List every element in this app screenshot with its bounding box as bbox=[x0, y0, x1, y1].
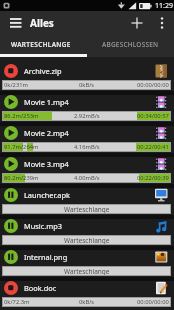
staticText: 00:22/00:41 bbox=[137, 143, 169, 151]
staticText: Music.mp3 bbox=[24, 221, 62, 231]
button[interactable]: Music.mp3 bbox=[0, 214, 174, 245]
staticText: Movie 1.mp4 bbox=[24, 97, 69, 107]
button[interactable]: Launcher.apk bbox=[0, 183, 174, 214]
staticText: 0k/231m bbox=[4, 81, 28, 89]
staticText: ABGESCHLOSSEN bbox=[102, 40, 159, 49]
staticText: Alles bbox=[30, 16, 54, 30]
button[interactable]: Book.doc bbox=[0, 276, 174, 307]
staticText: Movie 3.mp4 bbox=[24, 159, 69, 169]
staticText: Archive.zip bbox=[24, 66, 62, 76]
button[interactable]: ABGESCHLOSSEN bbox=[87, 35, 174, 57]
staticText: Warteschlange bbox=[64, 236, 110, 245]
staticText: 00:34/00:57 bbox=[137, 112, 169, 120]
staticText: 00:00/00:00 bbox=[137, 81, 169, 89]
staticText: 0kB/s bbox=[79, 298, 95, 306]
button[interactable]: Archive.zip bbox=[0, 59, 174, 90]
staticText: 00:22/00:39 bbox=[137, 174, 169, 182]
staticText: Book.doc bbox=[24, 283, 57, 293]
button[interactable] bbox=[152, 11, 172, 35]
staticText: 11:29 bbox=[155, 1, 173, 11]
staticText: Warteschlange bbox=[64, 267, 110, 276]
staticText: 4.00mB/s bbox=[74, 174, 100, 182]
staticText: 00:00/00:00 bbox=[137, 298, 169, 306]
staticText: 2.92mB/s bbox=[74, 112, 100, 120]
button[interactable] bbox=[125, 11, 148, 35]
staticText: 80.2m/239m bbox=[4, 174, 39, 182]
staticText: Movie 2.mp4 bbox=[24, 128, 69, 138]
staticText: Warteschlange bbox=[64, 205, 110, 214]
button[interactable]: Movie 2.mp4 bbox=[0, 121, 174, 152]
staticText: WARTESCHLANGE bbox=[11, 40, 71, 49]
staticText: Launcher.apk bbox=[24, 190, 70, 200]
button[interactable]: Movie 1.mp4 bbox=[0, 90, 174, 121]
button[interactable]: Internal.png bbox=[0, 245, 174, 276]
button[interactable] bbox=[4, 11, 28, 35]
button[interactable]: WARTESCHLANGE bbox=[0, 35, 87, 57]
button[interactable]: Movie 3.mp4 bbox=[0, 152, 174, 183]
staticText: 91.7m/264m bbox=[4, 143, 39, 151]
staticText: 86.2m/253m bbox=[4, 112, 39, 120]
staticText: Internal.png bbox=[24, 252, 68, 262]
staticText: 0k/72.3m bbox=[4, 298, 30, 306]
staticText: 4.16mB/s bbox=[74, 143, 100, 151]
staticText: 0kB/s bbox=[79, 81, 95, 89]
